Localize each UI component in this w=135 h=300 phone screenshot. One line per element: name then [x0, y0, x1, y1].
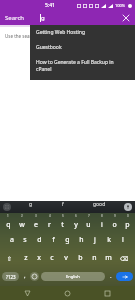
staticText: 5:41	[45, 2, 55, 9]
button[interactable]: Keyboard options	[3, 203, 11, 211]
staticText: y	[74, 220, 78, 230]
staticText: 2	[21, 214, 23, 218]
staticText: 5	[62, 214, 64, 218]
staticText: d	[37, 235, 42, 245]
staticText: 1	[7, 214, 9, 218]
staticText: How to Generate a Full Backup in cPanel	[36, 59, 129, 73]
staticText: good	[93, 201, 106, 208]
button[interactable]: s	[18, 231, 32, 249]
staticText: v	[64, 253, 68, 263]
button[interactable]: f	[58, 201, 68, 208]
staticText: .	[110, 272, 112, 280]
staticText: z	[24, 253, 28, 263]
staticText: ?123	[6, 274, 16, 280]
staticText: f	[62, 201, 64, 208]
button[interactable]: k	[102, 231, 116, 249]
button[interactable]: Guestbook	[30, 40, 135, 55]
staticText: f	[52, 235, 55, 245]
button[interactable]: Search	[0, 11, 135, 25]
staticText: w	[19, 220, 25, 230]
staticText: g	[29, 201, 33, 208]
staticText: 7	[88, 214, 90, 218]
button[interactable]: 6	[69, 214, 82, 231]
button[interactable]: 8	[95, 214, 108, 231]
staticText: English	[66, 274, 80, 279]
button[interactable]: Home	[62, 288, 73, 299]
staticText: x	[37, 253, 41, 263]
button[interactable]: Emoji	[30, 272, 39, 281]
button[interactable]: 9	[108, 214, 121, 231]
staticText: k	[107, 235, 111, 245]
button[interactable]: g	[25, 201, 37, 208]
button[interactable]: j	[88, 231, 102, 249]
staticText: a	[10, 235, 14, 245]
staticText: u	[86, 220, 91, 230]
button[interactable]: Backspace	[115, 249, 134, 267]
staticText: Use the search bar above to find article…	[5, 33, 90, 39]
staticText: l	[122, 235, 124, 245]
button[interactable]: d	[32, 231, 46, 249]
staticText: 8	[101, 214, 103, 218]
button[interactable]: 7	[82, 214, 95, 231]
button[interactable]: l	[116, 231, 130, 249]
staticText: n	[92, 253, 97, 263]
button[interactable]: 1	[1, 214, 15, 231]
staticText: 0	[127, 214, 129, 218]
staticText: e	[34, 220, 38, 230]
staticText: 6	[75, 214, 77, 218]
button[interactable]: h	[74, 231, 88, 249]
button[interactable]: Shift	[1, 249, 19, 267]
staticText: h	[79, 235, 84, 245]
button[interactable]: 5	[56, 214, 69, 231]
staticText: o	[112, 220, 117, 230]
button[interactable]: v	[59, 249, 73, 267]
staticText: g	[65, 235, 70, 245]
button[interactable]: Comma	[21, 272, 28, 280]
staticText: i	[101, 220, 103, 230]
button[interactable]: Voice input	[124, 203, 132, 211]
staticText: q	[6, 220, 11, 230]
staticText: Getting Web Hosting	[36, 29, 85, 36]
staticText: b	[78, 253, 83, 263]
staticText: ,	[24, 272, 26, 280]
button[interactable]: 3	[29, 214, 43, 231]
staticText: Search	[5, 14, 24, 22]
button[interactable]: Recent apps	[102, 288, 113, 299]
button[interactable]: 4	[43, 214, 56, 231]
button[interactable]: good	[89, 201, 110, 208]
button[interactable]: f	[46, 231, 60, 249]
button[interactable]: g	[60, 231, 74, 249]
button[interactable]: a	[5, 231, 18, 249]
button[interactable]: 0	[121, 214, 134, 231]
button[interactable]: Period	[107, 272, 114, 280]
staticText: 100%	[115, 3, 126, 8]
staticText: g	[41, 14, 45, 22]
button[interactable]: Clear search	[121, 13, 131, 23]
staticText: t	[61, 220, 64, 230]
button[interactable]: English	[41, 272, 105, 281]
staticText: 3	[35, 214, 37, 218]
staticText: ⌫	[120, 255, 129, 262]
button[interactable]: Back	[22, 288, 33, 299]
button[interactable]: z	[19, 249, 32, 267]
button[interactable]: x	[32, 249, 45, 267]
button[interactable]: m	[101, 249, 115, 267]
staticText: 9	[114, 214, 116, 218]
button[interactable]: b	[73, 249, 87, 267]
button[interactable]: How to Generate a Full Backup in cPanel	[30, 55, 135, 77]
staticText: ⇧	[7, 255, 13, 262]
staticText: r	[48, 220, 51, 230]
button[interactable]: Getting Web Hosting	[30, 25, 135, 40]
button[interactable]: n	[87, 249, 101, 267]
staticText: m	[105, 253, 112, 263]
staticText: Guestbook	[36, 44, 62, 51]
staticText: j	[94, 235, 96, 245]
button[interactable]: 2	[15, 214, 29, 231]
staticText: c	[50, 253, 54, 263]
staticText: p	[125, 220, 130, 230]
button[interactable]: ?123	[2, 272, 19, 281]
staticText: s	[23, 235, 27, 245]
staticText: 4	[49, 214, 51, 218]
button[interactable]: Enter	[116, 272, 133, 281]
button[interactable]: c	[45, 249, 59, 267]
